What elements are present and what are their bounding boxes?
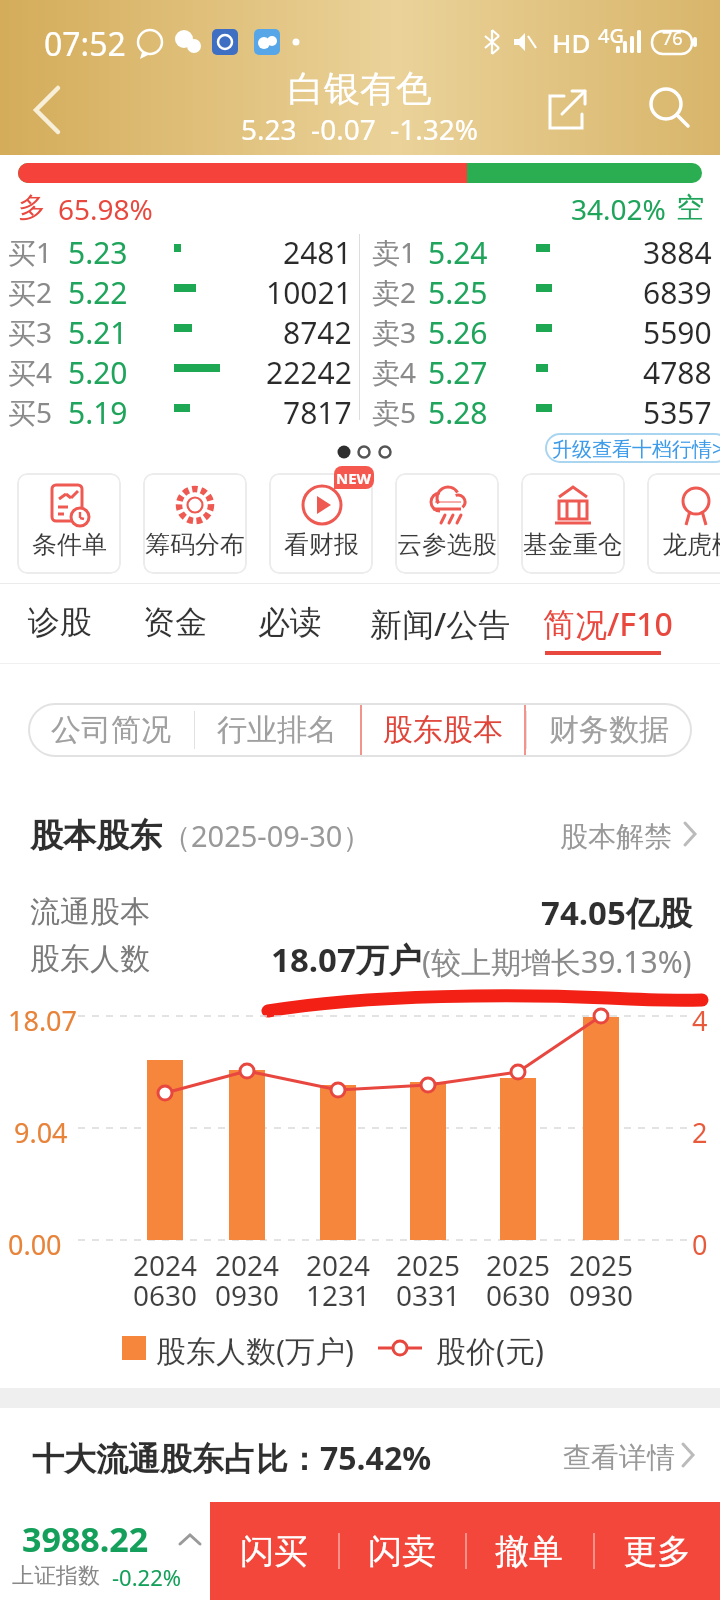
staticText: （2025-09-30） <box>162 816 372 856</box>
staticText: 升级查看十档行情> <box>552 435 720 462</box>
staticText: 白银有色 <box>288 66 432 111</box>
staticText: 22242 <box>266 352 352 392</box>
staticText: 5.24 <box>428 232 488 272</box>
staticText: 买1 <box>8 233 53 271</box>
staticText: 买3 <box>8 313 53 351</box>
staticText: 07:52 <box>44 22 126 66</box>
button[interactable]: 行业排名 <box>194 703 360 757</box>
staticText: 股东股本 <box>383 711 503 749</box>
button[interactable] <box>540 82 592 138</box>
staticText: 卖3 <box>372 313 417 351</box>
staticText: 财务数据 <box>549 711 669 749</box>
staticText: 74.05亿股 <box>541 890 692 935</box>
staticText: 0331 <box>396 1276 461 1314</box>
button[interactable]: 必读 <box>258 602 322 642</box>
staticText: 多 <box>18 190 46 225</box>
staticText: 买5 <box>8 393 53 431</box>
button[interactable]: 股本解禁 <box>560 815 700 855</box>
staticText: 查看详情 <box>563 1440 675 1475</box>
staticText: 2 <box>692 1114 708 1151</box>
staticText: 条件单 <box>32 529 107 560</box>
staticText: 5.20 <box>68 352 128 392</box>
staticText: 股东人数 <box>30 940 150 978</box>
button[interactable]: 闪买 <box>210 1502 338 1600</box>
button[interactable]: 基金重仓 <box>521 473 625 574</box>
button[interactable]: 升级查看十档行情> <box>545 433 720 463</box>
staticText: 18.07 <box>8 1002 78 1039</box>
staticText: 更多 <box>623 1530 691 1573</box>
staticText: -0.22% <box>112 1562 182 1592</box>
button[interactable] <box>20 80 76 140</box>
button[interactable]: 新闻/公告 <box>370 602 511 646</box>
staticText: 3884 <box>643 232 712 272</box>
button[interactable]: 公司简况 <box>28 703 194 757</box>
staticText: 股价(元) <box>436 1330 544 1371</box>
staticText: 十大流通股东占比：75.42% <box>32 1436 432 1480</box>
staticText: 2024 <box>215 1246 280 1284</box>
staticText: 行业排名 <box>217 711 337 749</box>
staticText: 龙虎榜 <box>662 529 720 560</box>
staticText: 上证指数 <box>12 1562 100 1590</box>
staticText: 4 <box>692 1002 708 1039</box>
button[interactable]: 更多 <box>593 1502 720 1600</box>
staticText: 6839 <box>643 272 712 312</box>
button[interactable]: 资金 <box>143 602 207 642</box>
staticText: 5.23 <box>68 232 128 272</box>
staticText: 5357 <box>643 392 712 432</box>
staticText: 股东人数(万户) <box>156 1330 354 1371</box>
staticText: 筹码分布 <box>145 529 245 560</box>
staticText: 9.04 <box>14 1114 68 1151</box>
staticText: 股本股东 <box>30 815 162 857</box>
staticText: 新闻/公告 <box>370 602 511 646</box>
staticText: 基金重仓 <box>523 529 623 560</box>
button[interactable]: 简况/F10 <box>543 602 673 646</box>
staticText: 空 <box>676 190 704 225</box>
button[interactable]: 十大流通股东占比：75.42% <box>0 1408 720 1502</box>
staticText: 闪买 <box>240 1530 308 1573</box>
staticText: HD <box>552 25 591 60</box>
staticText: 5.28 <box>428 392 488 432</box>
staticText: 资金 <box>143 602 207 642</box>
staticText: 3988.22 <box>22 1516 149 1562</box>
staticText: 5.21 <box>68 312 128 352</box>
staticText: 5.19 <box>68 392 128 432</box>
button[interactable]: 筹码分布 <box>143 473 247 574</box>
button[interactable]: 诊股 <box>28 602 92 642</box>
staticText: 卖5 <box>372 393 417 431</box>
staticText: 7817 <box>283 392 352 432</box>
staticText: 撤单 <box>495 1530 563 1573</box>
staticText: 5.23 -0.07 -1.32% <box>241 110 479 148</box>
button[interactable]: 云参选股 <box>395 473 499 574</box>
staticText: 2024 <box>133 1246 198 1284</box>
staticText: 0930 <box>215 1276 280 1314</box>
staticText: 5590 <box>643 312 712 352</box>
button[interactable]: 股东股本 <box>360 703 526 757</box>
button[interactable]: 看财报 <box>269 473 373 574</box>
staticText: 2481 <box>283 232 352 272</box>
button[interactable]: 撤单 <box>465 1502 593 1600</box>
staticText: 卖4 <box>372 353 417 391</box>
button[interactable]: 3988.22 <box>0 1502 210 1600</box>
button[interactable] <box>642 82 698 138</box>
staticText: 公司简况 <box>51 711 171 749</box>
staticText: 2024 <box>306 1246 371 1284</box>
staticText: 2025 <box>569 1246 634 1284</box>
staticText: 18.07万户 <box>271 937 422 982</box>
staticText: 0930 <box>569 1276 634 1314</box>
staticText: 0.00 <box>8 1226 62 1263</box>
staticText: 76 <box>662 26 683 51</box>
staticText: 闪卖 <box>368 1530 436 1573</box>
staticText: 65.98% <box>58 190 153 228</box>
staticText: 4788 <box>643 352 712 392</box>
staticText: 看财报 <box>284 529 359 560</box>
staticText: 云参选股 <box>397 529 497 560</box>
staticText: 0 <box>692 1226 708 1263</box>
button[interactable]: 龙虎榜 <box>647 473 720 574</box>
button[interactable]: 条件单 <box>17 473 121 574</box>
staticText: 5.25 <box>428 272 488 312</box>
button[interactable]: 财务数据 <box>526 703 692 757</box>
staticText: 5.22 <box>68 272 128 312</box>
button[interactable]: 闪卖 <box>338 1502 466 1600</box>
staticText: NEW <box>336 468 372 488</box>
staticText: (较上期增长39.13%) <box>422 941 692 982</box>
